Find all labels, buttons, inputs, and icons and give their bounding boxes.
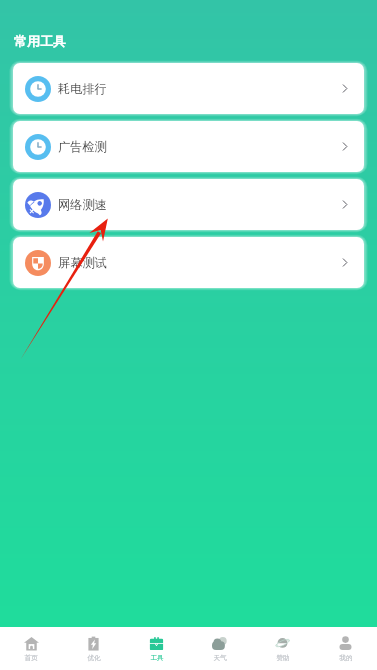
button[interactable]: 广告检测 xyxy=(13,121,364,172)
staticText: 网络测速 xyxy=(58,197,107,212)
staticText: 天气 xyxy=(213,654,227,662)
staticText: 常用工具 xyxy=(14,33,66,49)
button[interactable]: 我的 xyxy=(314,627,377,670)
staticText: 耗电排行 xyxy=(58,81,107,96)
button[interactable]: 优化 xyxy=(62,627,125,670)
button[interactable]: 天气 xyxy=(188,627,251,670)
staticText: 首页 xyxy=(24,654,38,662)
staticText: 工具 xyxy=(150,654,164,662)
staticText: 广告检测 xyxy=(58,139,107,154)
staticText: 我的 xyxy=(339,654,353,662)
button[interactable]: 工具 xyxy=(125,627,188,670)
staticText: 屏幕测试 xyxy=(58,255,107,270)
button[interactable]: 屏幕测试 xyxy=(13,237,364,288)
button[interactable]: 首页 xyxy=(0,627,62,670)
staticText: 优化 xyxy=(87,654,101,662)
button[interactable]: 赞助 xyxy=(251,627,314,670)
staticText: 赞助 xyxy=(276,654,290,662)
button[interactable]: 耗电排行 xyxy=(13,63,364,114)
button[interactable]: 网络测速 xyxy=(13,179,364,230)
